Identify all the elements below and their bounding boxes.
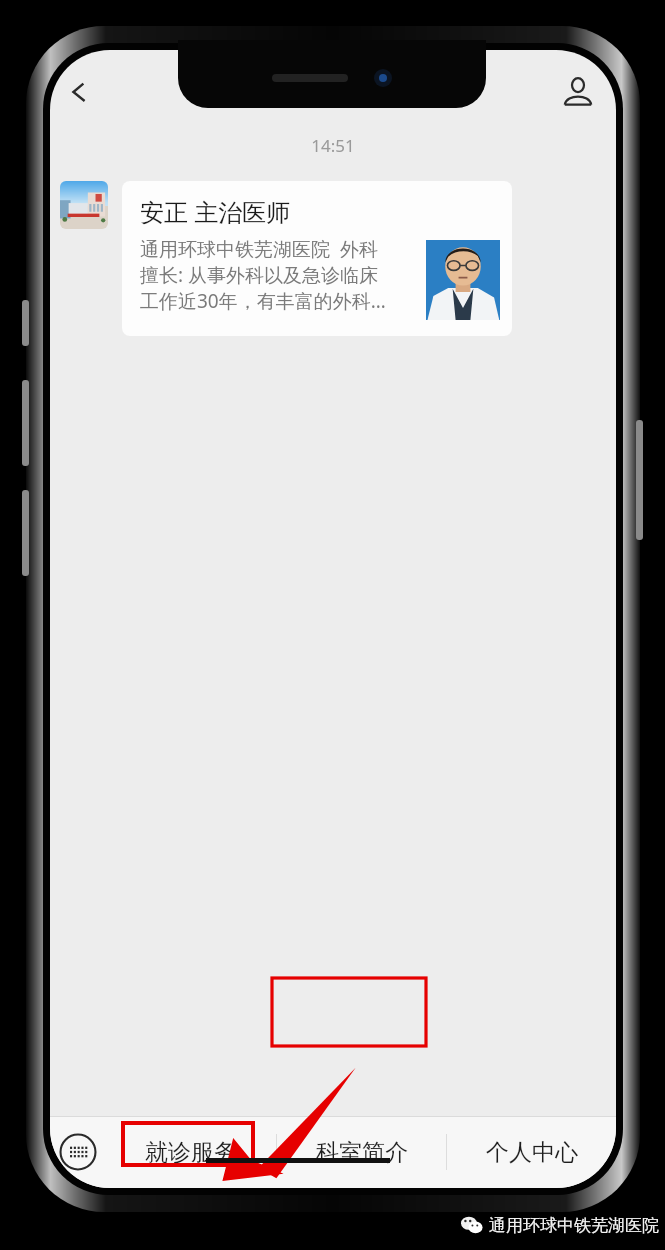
button[interactable]: Back xyxy=(56,69,102,115)
staticText: 科室简介 xyxy=(316,1138,408,1167)
staticText: 安正 主治医师 xyxy=(140,195,291,228)
button[interactable]: 安正 主治医师 xyxy=(122,181,512,336)
staticText: 个人中心 xyxy=(486,1138,578,1167)
staticText: 通用环球中铁芜湖医院 xyxy=(489,1215,659,1236)
button[interactable]: 科室简介 xyxy=(277,1116,446,1188)
staticText: 工作近30年，有丰富的外科… xyxy=(140,288,386,314)
staticText: 擅长: 从事外科以及急诊临床 xyxy=(140,262,379,288)
button[interactable]: 个人中心 xyxy=(447,1116,616,1188)
staticText: 14:51 xyxy=(311,134,355,157)
button[interactable]: 就诊服务 xyxy=(106,1116,276,1188)
staticText: 就诊服务 xyxy=(145,1138,237,1167)
button[interactable]: Contact profile xyxy=(554,68,602,116)
staticText: 通用环球中铁芜湖医院 外科 xyxy=(140,236,378,262)
button[interactable] xyxy=(60,181,108,229)
button[interactable]: Keyboard xyxy=(50,1116,106,1188)
